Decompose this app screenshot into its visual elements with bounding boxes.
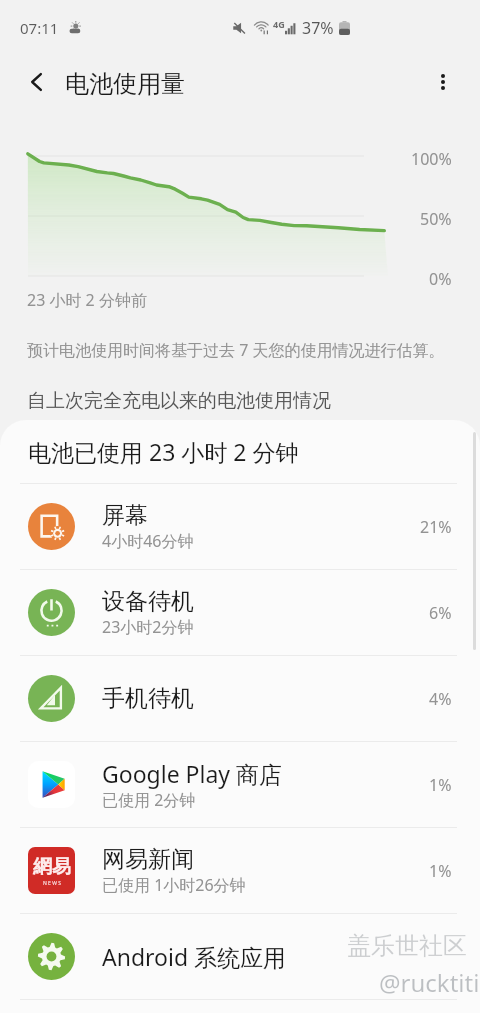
- staticText: 23 小时 2 分钟前: [27, 289, 147, 311]
- staticText: 6%: [429, 602, 452, 624]
- button[interactable]: Google Play 商店: [0, 742, 480, 827]
- staticText: 预计电池使用时间将基于过去 7 天您的使用情况进行估算。: [27, 339, 445, 361]
- staticText: 电池已使用 23 小时 2 分钟: [28, 436, 299, 467]
- staticText: Android 系统应用: [102, 941, 287, 972]
- button[interactable]: 網易: [0, 828, 480, 913]
- staticText: 07:11: [20, 18, 59, 38]
- staticText: 电池使用量: [65, 69, 185, 99]
- button[interactable]: 手机待机: [0, 656, 480, 741]
- staticText: 设备待机: [102, 587, 194, 616]
- staticText: 盖乐世社区: [347, 931, 467, 961]
- staticText: 37%: [302, 17, 334, 39]
- staticText: 21%: [420, 516, 452, 538]
- staticText: 4%: [429, 688, 452, 710]
- button[interactable]: 屏幕: [0, 484, 480, 569]
- staticText: 23小时2分钟: [102, 616, 194, 638]
- staticText: N E W S: [43, 880, 61, 887]
- staticText: 网易新闻: [102, 845, 194, 874]
- button[interactable]: 设备待机: [0, 570, 480, 655]
- staticText: Google Play 商店: [102, 758, 283, 789]
- staticText: 0%: [429, 268, 452, 290]
- button[interactable]: More options: [421, 60, 465, 104]
- staticText: 已使用 2分钟: [102, 789, 196, 811]
- staticText: 手机待机: [102, 684, 194, 713]
- staticText: @rucktiti: [379, 966, 480, 999]
- staticText: 100%: [411, 148, 452, 170]
- staticText: 已使用 1小时26分钟: [102, 874, 246, 896]
- staticText: 4G: [273, 18, 285, 30]
- staticText: 屏幕: [102, 501, 148, 530]
- staticText: 1%: [429, 860, 452, 882]
- staticText: 1%: [429, 774, 452, 796]
- staticText: 50%: [420, 208, 452, 230]
- button[interactable]: Android 系统应用: [0, 914, 480, 999]
- staticText: 網易: [33, 855, 71, 879]
- staticText: 自上次完全充电以来的电池使用情况: [27, 389, 331, 413]
- staticText: 4小时46分钟: [102, 530, 194, 552]
- button[interactable]: Back: [15, 60, 59, 104]
